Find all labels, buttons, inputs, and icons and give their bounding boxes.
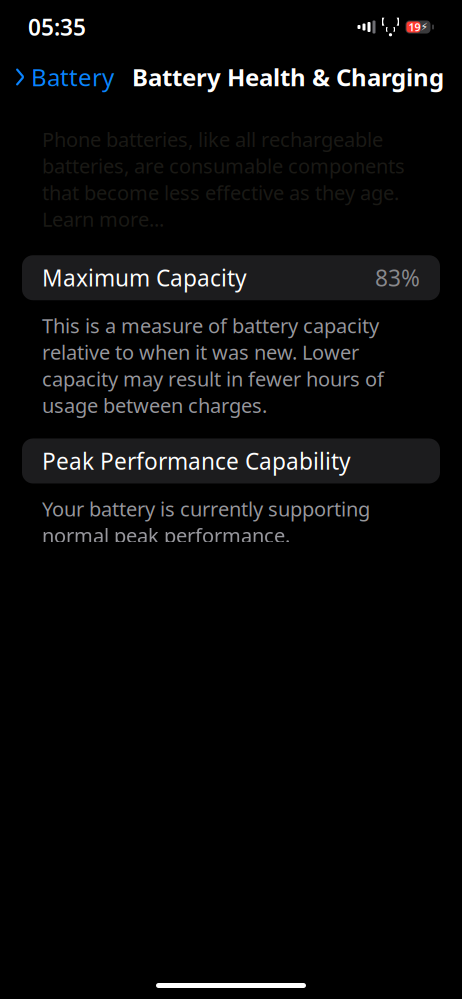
staticText: Phone batteries, like all rechargeable b… (42, 126, 405, 232)
staticText: Maximum Capacity (42, 263, 247, 293)
button[interactable]: Battery (14, 55, 120, 99)
staticText: Battery Health & Charging (132, 61, 444, 93)
staticText: This is a measure of battery capacity re… (42, 312, 384, 418)
staticText: Battery (31, 61, 114, 93)
staticText: 19 (408, 20, 420, 34)
button[interactable]: Peak Performance Capability (22, 438, 440, 483)
staticText: 05:35 (28, 12, 86, 42)
staticText: Your battery is currently supporting nor… (42, 495, 370, 549)
staticText: Peak Performance Capability (42, 446, 351, 476)
staticText: 83% (375, 263, 420, 293)
staticText: ⚡︎ (420, 21, 427, 33)
button[interactable]: Maximum Capacity (22, 255, 440, 300)
